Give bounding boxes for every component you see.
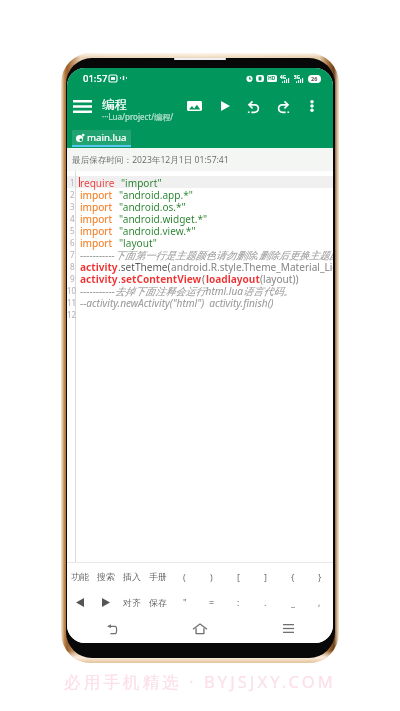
button[interactable]: 手册	[145, 563, 171, 590]
staticText: import	[80, 200, 113, 212]
staticText: :	[237, 596, 240, 608]
staticText: 插入	[123, 571, 141, 582]
staticText: import	[80, 224, 113, 236]
staticText: 8	[70, 261, 75, 272]
staticText: .setTheme(	[118, 260, 171, 272]
button[interactable]: Next	[93, 590, 119, 614]
staticText: import	[80, 212, 113, 224]
staticText: .	[118, 272, 121, 284]
staticText: import	[80, 236, 113, 248]
button[interactable]: ,	[306, 590, 333, 614]
button[interactable]: Previous	[67, 590, 93, 614]
staticText: 4	[70, 213, 75, 224]
button[interactable]: (	[171, 563, 198, 590]
staticText: 2	[70, 189, 75, 200]
button[interactable]: :	[225, 590, 252, 614]
staticText: 编程	[102, 97, 128, 113]
staticText: "import"	[121, 176, 162, 188]
staticText: (	[183, 571, 186, 583]
button[interactable]: Image	[180, 88, 208, 124]
button[interactable]: More options	[298, 88, 326, 124]
staticText: }	[318, 571, 322, 583]
staticText: loadlayout	[206, 272, 260, 284]
button[interactable]: .	[252, 590, 279, 614]
staticText: 必用手机精选 · BYJSJXY.COM	[64, 670, 336, 693]
staticText: --activity.newActivity("html") activity.…	[80, 296, 274, 308]
button[interactable]: Redo	[269, 88, 297, 124]
staticText: 保存	[149, 597, 167, 608]
staticText: [	[237, 571, 240, 583]
button[interactable]: )	[198, 563, 225, 590]
button[interactable]: =	[198, 590, 225, 614]
button[interactable]: main.lua	[72, 130, 131, 145]
button[interactable]: 搜索	[93, 563, 119, 590]
staticText: 搜索	[97, 571, 115, 582]
staticText: 1	[70, 177, 75, 188]
button[interactable]: [	[225, 563, 252, 590]
button[interactable]: 对齐	[119, 590, 145, 614]
staticText: 7	[70, 249, 75, 260]
staticText: 9	[70, 273, 75, 284]
staticText: ]	[264, 571, 267, 583]
staticText: 3	[70, 201, 75, 212]
button[interactable]: 插入	[119, 563, 145, 590]
staticText: 12	[67, 309, 75, 320]
staticText: 手册	[149, 571, 167, 582]
staticText: android.R.style.Theme_Material_Light	[171, 260, 333, 272]
staticText: )	[210, 571, 213, 583]
staticText: import	[80, 188, 113, 200]
button[interactable]: ]	[252, 563, 279, 590]
staticText: _	[291, 596, 295, 608]
staticText: "android.widget.*"	[119, 212, 208, 224]
button[interactable]: Recent apps	[244, 614, 333, 643]
staticText: -----------下面第一行是主题颜色请勿删除,删除后更换主题颜色	[80, 248, 333, 260]
button[interactable]: Home	[155, 614, 244, 643]
staticText: HD	[268, 75, 276, 82]
staticText: "android.app.*"	[119, 188, 193, 200]
staticText: 10	[67, 285, 75, 296]
staticText: 01:57	[83, 72, 108, 85]
staticText: 11	[67, 297, 75, 308]
staticText: "layout"	[119, 236, 157, 248]
staticText: ,	[318, 596, 321, 608]
staticText: require	[80, 176, 115, 188]
button[interactable]: {	[279, 563, 306, 590]
button[interactable]: "	[171, 590, 198, 614]
staticText: .	[264, 596, 267, 608]
button[interactable]: Menu	[67, 88, 97, 124]
button[interactable]: }	[306, 563, 333, 590]
staticText: 4G	[280, 74, 286, 80]
staticText: 最后保存时间：2023年12月1日 01:57:41	[72, 154, 229, 166]
staticText: ···Lua/project/编程/	[102, 111, 174, 122]
staticText: 功能	[71, 571, 89, 582]
staticText: "android.view.*"	[119, 224, 196, 236]
button[interactable]: Back	[67, 614, 155, 643]
staticText: "	[183, 596, 187, 608]
button[interactable]: 功能	[67, 563, 93, 590]
staticText: (layout))	[260, 272, 299, 284]
staticText: =	[209, 596, 215, 608]
staticText: 5G	[294, 74, 300, 80]
staticText: 6	[70, 237, 75, 248]
staticText: 对齐	[123, 597, 141, 608]
staticText: activity	[80, 272, 118, 284]
staticText: 26	[311, 75, 318, 83]
staticText: -----------去掉下面注释会运行html.lua语言代码。	[80, 284, 294, 296]
staticText: setContentView	[121, 272, 202, 284]
staticText: 5	[70, 225, 75, 236]
staticText: {	[291, 571, 295, 583]
button[interactable]: _	[279, 590, 306, 614]
button[interactable]: Undo	[240, 88, 268, 124]
staticText: "android.os.*"	[119, 200, 186, 212]
staticText: main.lua	[87, 131, 127, 144]
staticText: activity	[80, 260, 118, 272]
button[interactable]: Run	[211, 88, 239, 124]
staticText: (	[202, 272, 206, 284]
button[interactable]: 保存	[145, 590, 171, 614]
